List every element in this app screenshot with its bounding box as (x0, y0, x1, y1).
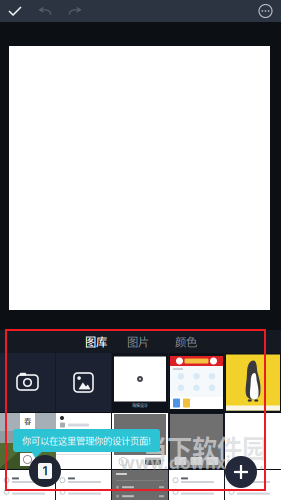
button[interactable]: 图库 (85, 330, 107, 352)
staticText: 春 (24, 415, 31, 426)
button[interactable]: Take photo (0, 353, 55, 412)
button[interactable]: Photo 1 (0, 413, 55, 469)
staticText: 雨 (24, 426, 31, 437)
staticText: 你可以在这里管理你的设计页面! (22, 434, 151, 447)
button[interactable]: 颜色 (175, 330, 197, 352)
button[interactable]: Undo (30, 0, 60, 22)
button[interactable]: Design 1 (112, 353, 168, 412)
button[interactable]: Design 2 (169, 353, 224, 412)
staticText: 颜色 (175, 333, 197, 350)
button[interactable]: Photo 10 (225, 470, 281, 500)
staticText: 图片 (127, 333, 149, 350)
staticText: 当下软件园 (142, 429, 267, 465)
button[interactable]: 图片 (127, 330, 149, 352)
staticText: 海报设计 (132, 403, 148, 408)
button[interactable]: Photo 3 (112, 413, 168, 469)
staticText: 1 (42, 464, 47, 478)
staticText: www.downxia.com (120, 452, 265, 473)
button[interactable]: Photo 8 (112, 470, 168, 500)
button[interactable]: Confirm (0, 0, 30, 22)
button[interactable]: Design 3 (225, 353, 281, 412)
button[interactable]: Photo 6 (0, 470, 55, 500)
staticText: 图库 (85, 333, 107, 350)
button[interactable]: Photo 9 (169, 470, 224, 500)
button[interactable]: Redo (60, 0, 90, 22)
button[interactable]: Page 1 (26, 452, 64, 490)
button[interactable]: Choose from album (56, 353, 111, 412)
button[interactable]: More options (250, 0, 281, 22)
button[interactable]: Add page (222, 453, 260, 491)
button[interactable]: Photo 5 (225, 413, 281, 469)
button[interactable]: Photo 7 (56, 470, 111, 500)
button[interactable]: Photo 4 (169, 413, 224, 469)
button[interactable]: Photo 2 (56, 413, 111, 469)
